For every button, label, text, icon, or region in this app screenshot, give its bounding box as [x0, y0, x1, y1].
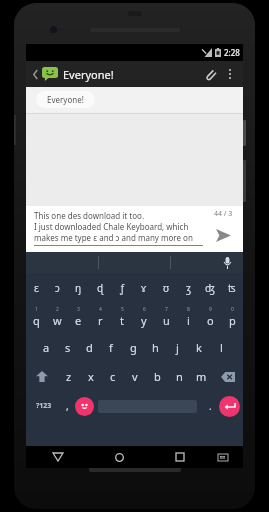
- button[interactable]: a: [36, 333, 57, 362]
- button[interactable]: Back: [30, 63, 40, 85]
- staticText: ŋ: [75, 281, 82, 295]
- button[interactable]: .: [201, 391, 219, 421]
- button[interactable]: Voice input: [219, 255, 235, 271]
- button[interactable]: Attach: [199, 63, 221, 85]
- staticText: x: [88, 369, 94, 384]
- button[interactable]: 6: [133, 303, 155, 333]
- button[interactable]: ʤ: [199, 273, 221, 303]
- staticText: v: [132, 369, 138, 384]
- staticText: l: [220, 340, 223, 355]
- button[interactable]: Recents: [169, 446, 191, 468]
- staticText: This one des download it too.: [34, 210, 145, 221]
- button[interactable]: 3: [68, 303, 89, 333]
- button[interactable]: k: [188, 333, 210, 362]
- button[interactable]: x: [80, 362, 102, 391]
- button[interactable]: m: [190, 362, 212, 391]
- staticText: c: [110, 369, 116, 384]
- button[interactable]: 5: [111, 303, 133, 333]
- staticText: 44 / 3: [214, 209, 233, 219]
- staticText: ʊ: [163, 281, 170, 295]
- staticText: 3: [77, 306, 80, 313]
- staticText: ɤ: [141, 281, 147, 295]
- button[interactable]: s: [57, 333, 78, 362]
- button[interactable]: ɔ: [47, 273, 68, 303]
- staticText: t: [120, 313, 124, 328]
- button[interactable]: Emoji: [75, 397, 94, 416]
- button[interactable]: v: [124, 362, 146, 391]
- staticText: j: [176, 340, 179, 355]
- staticText: g: [130, 340, 137, 355]
- staticText: ʦ: [228, 281, 236, 295]
- staticText: ɔ: [55, 281, 60, 295]
- staticText: ,: [66, 399, 69, 413]
- button[interactable]: Everyone!: [36, 91, 95, 108]
- button[interactable]: More options: [221, 63, 239, 85]
- staticText: ʒ: [186, 281, 191, 295]
- button[interactable]: Backspace: [212, 362, 243, 391]
- staticText: .: [209, 399, 212, 413]
- button[interactable]: d: [78, 333, 100, 362]
- button[interactable]: l: [210, 333, 232, 362]
- button[interactable]: ŋ: [68, 273, 89, 303]
- button[interactable]: c: [102, 362, 124, 391]
- staticText: 7: [165, 306, 168, 313]
- button[interactable]: z: [58, 362, 80, 391]
- button[interactable]: j: [166, 333, 188, 362]
- button[interactable]: ʒ: [177, 273, 199, 303]
- button[interactable]: Back: [47, 446, 69, 468]
- button[interactable]: 0: [221, 303, 243, 333]
- button[interactable]: ,: [59, 391, 75, 421]
- button[interactable]: ?123: [29, 391, 59, 421]
- button[interactable]: Home: [108, 446, 130, 468]
- staticText: i: [187, 313, 190, 328]
- staticText: 2:28: [224, 47, 240, 58]
- button[interactable]: ɛ: [26, 273, 47, 303]
- staticText: m: [196, 369, 207, 384]
- staticText: y: [141, 313, 147, 328]
- staticText: f: [109, 340, 113, 355]
- staticText: d: [86, 340, 93, 355]
- staticText: n: [176, 369, 183, 384]
- button[interactable]: Switch keyboard: [213, 447, 233, 467]
- staticText: ɖ: [97, 281, 104, 295]
- staticText: 0: [231, 306, 234, 313]
- button[interactable]: ɖ: [89, 273, 111, 303]
- button[interactable]: ƒ: [111, 273, 133, 303]
- button[interactable]: 4: [89, 303, 111, 333]
- staticText: Everyone!: [47, 94, 84, 105]
- staticText: ʤ: [205, 281, 215, 295]
- button[interactable]: 8: [177, 303, 199, 333]
- staticText: p: [229, 313, 236, 328]
- button[interactable]: 7: [155, 303, 177, 333]
- button[interactable]: g: [122, 333, 144, 362]
- button[interactable]: Enter: [219, 396, 240, 417]
- button[interactable]: n: [168, 362, 190, 391]
- button[interactable]: Shift: [26, 362, 58, 391]
- staticText: z: [66, 369, 72, 384]
- button[interactable]: ʊ: [155, 273, 177, 303]
- staticText: w: [53, 313, 62, 328]
- button[interactable]: 9: [199, 303, 221, 333]
- staticText: ?123: [36, 401, 52, 411]
- staticText: makes me type ɛ and ɔ and many more on: [34, 232, 193, 243]
- staticText: ɛ: [34, 281, 39, 295]
- staticText: 4: [99, 306, 102, 313]
- staticText: s: [65, 340, 71, 355]
- staticText: a: [43, 340, 50, 355]
- button[interactable]: b: [146, 362, 168, 391]
- button[interactable]: 1: [26, 303, 47, 333]
- button[interactable]: h: [144, 333, 166, 362]
- staticText: q: [33, 313, 40, 328]
- button[interactable]: Send: [210, 222, 236, 248]
- staticText: h: [152, 340, 159, 355]
- staticText: 5: [121, 306, 124, 313]
- button[interactable]: ɤ: [133, 273, 155, 303]
- button[interactable]: 2: [47, 303, 68, 333]
- button[interactable]: Everyone!: [63, 67, 199, 82]
- staticText: 1: [35, 306, 38, 313]
- staticText: 2: [56, 306, 59, 313]
- button[interactable]: f: [100, 333, 122, 362]
- button[interactable]: ʦ: [221, 273, 243, 303]
- staticText: r: [98, 313, 103, 328]
